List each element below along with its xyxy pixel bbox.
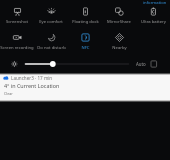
button[interactable]: Screen recording: [0, 30, 34, 51]
staticText: Launcher3 · 17 min: [11, 75, 53, 81]
staticText: 4° in Current Location: [4, 82, 60, 89]
staticText: Do not disturb: [37, 45, 66, 51]
staticText: Screenshot: [6, 19, 28, 25]
button[interactable]: Do not disturb: [34, 30, 68, 51]
staticText: NFC: [81, 45, 90, 51]
button[interactable]: Nearby: [102, 30, 136, 51]
button[interactable]: Floating dock: [68, 4, 102, 25]
button[interactable]: NFC: [68, 30, 102, 51]
button[interactable]: Brightness: [0, 58, 170, 70]
staticText: Floating dock: [72, 19, 99, 25]
button[interactable]: Screenshot: [0, 4, 34, 25]
staticText: Screen recording: [0, 45, 34, 51]
staticText: Clear: [4, 91, 13, 96]
staticText: information: [143, 0, 167, 6]
button[interactable]: Launcher3 · 17 min: [0, 73, 170, 102]
staticText: MirrorShare: [107, 19, 131, 25]
staticText: Nearby: [112, 45, 127, 51]
staticText: Eye comfort: [39, 19, 63, 25]
staticText: Auto: [136, 61, 146, 67]
staticText: Ultra battery: [141, 19, 166, 25]
button[interactable]: MirrorShare: [102, 4, 136, 25]
button[interactable]: Ultra battery: [136, 4, 170, 25]
button[interactable]: Eye comfort: [34, 4, 68, 25]
